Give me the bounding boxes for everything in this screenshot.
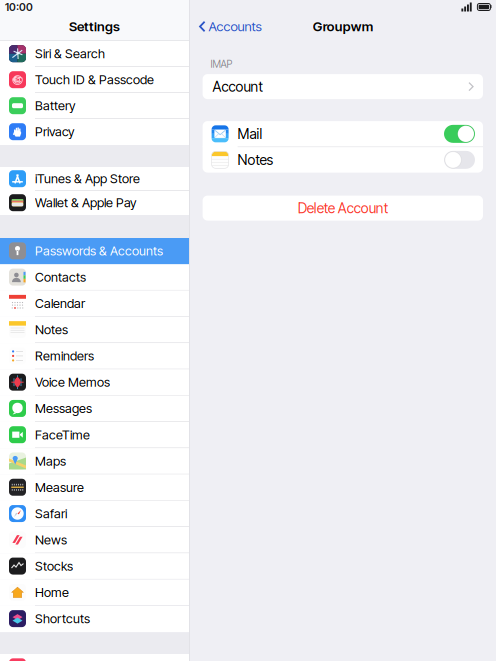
button[interactable]: Privacy (0, 119, 189, 145)
staticText: Notes (35, 322, 68, 337)
button[interactable]: iTunes & App Store (0, 167, 189, 191)
staticText: Shortcuts (35, 611, 90, 626)
staticText: Contacts (35, 269, 86, 285)
button[interactable]: Voice Memos (0, 369, 189, 396)
staticText: Maps (35, 453, 66, 469)
button[interactable]: Notes (0, 317, 189, 343)
button[interactable]: Contacts (0, 264, 189, 291)
button[interactable]: Messages (0, 396, 189, 422)
staticText: News (35, 532, 67, 548)
button[interactable]: Delete Account (203, 196, 483, 221)
staticText: Measure (35, 479, 84, 495)
staticText: Privacy (35, 124, 75, 139)
staticText: Notes (238, 151, 274, 168)
staticText: Siri & Search (35, 46, 105, 61)
staticText: Wallet & Apple Pay (35, 195, 137, 210)
staticText: Settings (69, 18, 120, 34)
staticText: Delete Account (298, 200, 388, 216)
button[interactable]: Wallet & Apple Pay (0, 191, 189, 215)
staticText: Reminders (35, 348, 94, 364)
button[interactable]: Account (203, 74, 483, 99)
button[interactable]: Stocks (0, 553, 189, 579)
staticText: Safari (35, 506, 67, 521)
staticText: iTunes & App Store (35, 171, 140, 186)
staticText: Account (213, 78, 263, 95)
staticText: Home (35, 585, 69, 600)
button[interactable]: Calendar (0, 290, 189, 317)
staticText: FaceTime (35, 427, 90, 442)
button[interactable]: Notes (203, 147, 483, 173)
staticText: Accounts (208, 18, 261, 34)
staticText: Stocks (35, 558, 73, 574)
staticText: Messages (35, 401, 92, 416)
button[interactable]: Battery (0, 93, 189, 119)
staticText: Battery (35, 98, 76, 113)
staticText: Touch ID & Passcode (35, 72, 154, 87)
button[interactable]: Reminders (0, 343, 189, 369)
button[interactable]: Accounts (190, 15, 261, 37)
button[interactable]: Touch ID & Passcode (0, 67, 189, 93)
button[interactable]: Siri & Search (0, 41, 189, 67)
staticText: Groupwm (313, 18, 373, 34)
staticText: 10:00 (5, 0, 33, 13)
button[interactable]: Home (0, 579, 189, 606)
button[interactable]: Measure (0, 474, 189, 501)
button[interactable]: Mail (203, 121, 483, 147)
staticText: Calendar (35, 296, 85, 311)
button[interactable]: FaceTime (0, 422, 189, 448)
button[interactable]: Maps (0, 448, 189, 474)
staticText: Passwords & Accounts (35, 243, 163, 259)
staticText: Voice Memos (35, 374, 110, 390)
button[interactable]: News (0, 527, 189, 553)
button[interactable]: Passwords & Accounts (0, 238, 189, 264)
button[interactable]: Shortcuts (0, 606, 189, 632)
staticText: Mail (238, 125, 263, 142)
button[interactable]: Music (0, 654, 189, 661)
staticText: IMAP (211, 58, 233, 70)
button[interactable]: Safari (0, 501, 189, 527)
